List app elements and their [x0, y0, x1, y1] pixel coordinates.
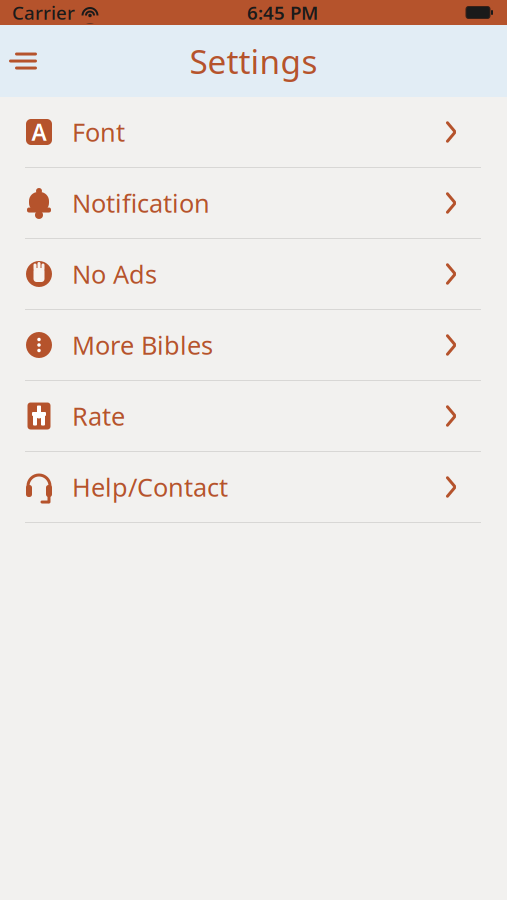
staticText: No Ads: [72, 257, 157, 291]
button[interactable]: Rate: [0, 381, 507, 451]
staticText: Help/Contact: [72, 470, 228, 504]
button[interactable]: Menu: [0, 35, 52, 87]
staticText: Settings: [189, 39, 317, 83]
staticText: Carrier: [12, 0, 75, 25]
button[interactable]: More Bibles: [0, 310, 507, 380]
button[interactable]: Notification: [0, 168, 507, 238]
button[interactable]: No Ads: [0, 239, 507, 309]
staticText: Font: [72, 115, 125, 149]
staticText: Notification: [72, 186, 210, 220]
staticText: More Bibles: [72, 328, 213, 362]
staticText: Rate: [72, 399, 125, 433]
button[interactable]: A: [0, 97, 507, 167]
staticText: 6:45 PM: [247, 0, 318, 25]
staticText: A: [31, 117, 46, 147]
button[interactable]: Help/Contact: [0, 452, 507, 522]
